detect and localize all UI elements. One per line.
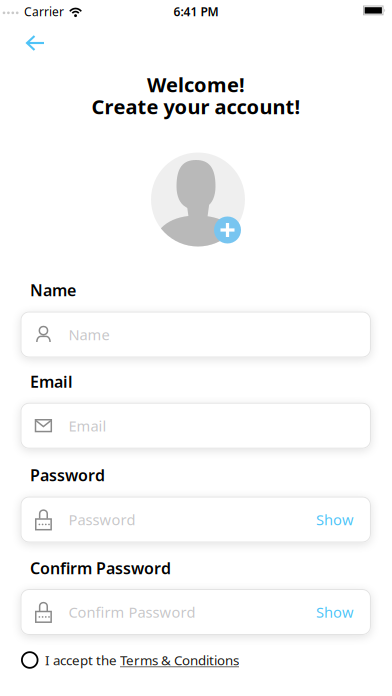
staticText: Email [30, 371, 73, 392]
staticText: Name [30, 279, 76, 301]
staticText: Show [316, 510, 354, 529]
button[interactable]: Show [316, 510, 371, 529]
button[interactable] [214, 216, 241, 243]
button[interactable]: Email [20, 403, 371, 449]
staticText: Password [30, 464, 105, 486]
staticText: Email [68, 416, 106, 435]
staticText: I accept the Terms & Conditions [45, 651, 239, 669]
staticText: 6:41 PM [173, 3, 218, 19]
staticText: Create your account! [91, 93, 300, 120]
staticText: Welcome! [147, 71, 245, 98]
staticText: Confirm Password [68, 602, 195, 622]
button[interactable]: Name [20, 311, 371, 357]
button[interactable]: Show [316, 602, 371, 622]
button[interactable]: Confirm Password [20, 589, 371, 635]
staticText: Show [316, 602, 354, 622]
staticText: Carrier [24, 3, 64, 19]
staticText: Password [68, 510, 135, 529]
button[interactable] [16, 25, 55, 61]
staticText: Name [68, 325, 109, 344]
staticText: Confirm Password [30, 557, 171, 579]
button[interactable]: Password [20, 496, 371, 542]
button[interactable]: I accept the Terms & Conditions [0, 651, 239, 669]
